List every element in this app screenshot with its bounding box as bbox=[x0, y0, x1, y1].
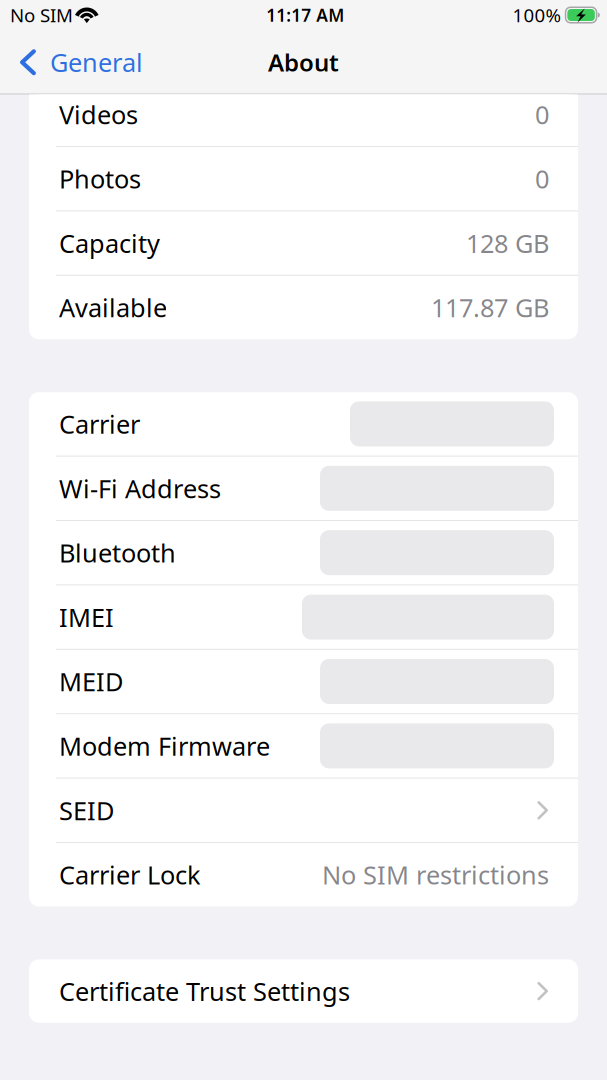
staticText: No SIM restrictions bbox=[322, 858, 549, 891]
staticText: Wi-Fi Address bbox=[59, 471, 221, 505]
staticText: 100% bbox=[512, 3, 561, 27]
staticText: Modem Firmware bbox=[59, 729, 270, 763]
button[interactable]: Bluetooth bbox=[29, 521, 578, 584]
staticText: Bluetooth bbox=[59, 536, 176, 569]
staticText: MEID bbox=[59, 665, 123, 698]
button[interactable]: Photos bbox=[29, 147, 578, 210]
staticText: About bbox=[268, 46, 339, 78]
staticText: Photos bbox=[59, 162, 141, 195]
button[interactable]: IMEI bbox=[29, 585, 578, 649]
button[interactable]: Wi-Fi Address bbox=[29, 457, 578, 520]
staticText: 11:17 AM bbox=[266, 3, 344, 26]
button[interactable]: Videos bbox=[29, 83, 578, 146]
staticText: Capacity bbox=[59, 226, 160, 260]
button[interactable]: SEID bbox=[29, 779, 578, 842]
button[interactable]: General bbox=[0, 39, 153, 85]
staticText: 0 bbox=[535, 162, 549, 195]
staticText: Carrier bbox=[59, 407, 140, 441]
staticText: Videos bbox=[59, 97, 138, 131]
staticText: IMEI bbox=[59, 600, 114, 634]
staticText: 0 bbox=[535, 97, 549, 131]
staticText: SEID bbox=[59, 793, 114, 827]
button[interactable]: Carrier Lock bbox=[29, 843, 578, 906]
button[interactable]: Certificate Trust Settings bbox=[29, 959, 578, 1023]
staticText: Carrier Lock bbox=[59, 858, 201, 891]
button[interactable]: Capacity bbox=[29, 211, 578, 275]
staticText: 128 GB bbox=[466, 226, 549, 260]
staticText: General bbox=[50, 45, 143, 79]
button[interactable]: Modem Firmware bbox=[29, 714, 578, 778]
button[interactable]: Carrier bbox=[29, 392, 578, 456]
staticText: Available bbox=[59, 291, 167, 324]
staticText: Certificate Trust Settings bbox=[59, 974, 350, 1008]
button[interactable]: MEID bbox=[29, 650, 578, 713]
button[interactable]: Available bbox=[29, 276, 578, 339]
staticText: 117.87 GB bbox=[431, 291, 549, 324]
staticText: No SIM bbox=[10, 3, 73, 27]
